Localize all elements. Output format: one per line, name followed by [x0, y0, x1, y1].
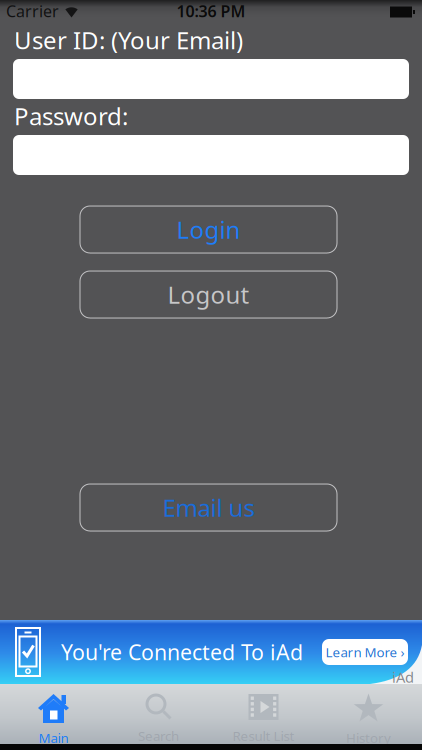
button[interactable]: History tab	[316, 684, 421, 744]
staticText: Login	[176, 214, 240, 245]
button[interactable]: Result List tab	[211, 684, 316, 744]
button[interactable]: Email us	[82, 484, 339, 531]
button[interactable]: Main tab	[1, 684, 106, 744]
button[interactable]: Search tab	[106, 684, 211, 744]
staticText: User ID: (Your Email)	[14, 24, 243, 56]
staticText: Password:	[14, 100, 128, 132]
staticText: Search	[138, 727, 179, 745]
staticText: Result List	[232, 727, 294, 745]
button[interactable]: Logout	[82, 271, 339, 318]
staticText: Logout	[167, 279, 249, 310]
staticText: History	[346, 729, 391, 747]
staticText: You're Connected To iAd	[61, 638, 303, 666]
button[interactable]: Login	[82, 206, 339, 253]
staticText: Email us	[162, 492, 254, 523]
staticText: Learn More ›	[325, 643, 404, 661]
staticText: iAd	[392, 667, 414, 687]
staticText: Main	[38, 729, 68, 747]
button[interactable]: iAd banner: You're Connected To iAd, Lea…	[0, 620, 422, 684]
staticText: Carrier	[6, 0, 59, 22]
staticText: 10:36 PM	[176, 0, 245, 22]
button[interactable]: Learn More ›	[322, 639, 408, 665]
